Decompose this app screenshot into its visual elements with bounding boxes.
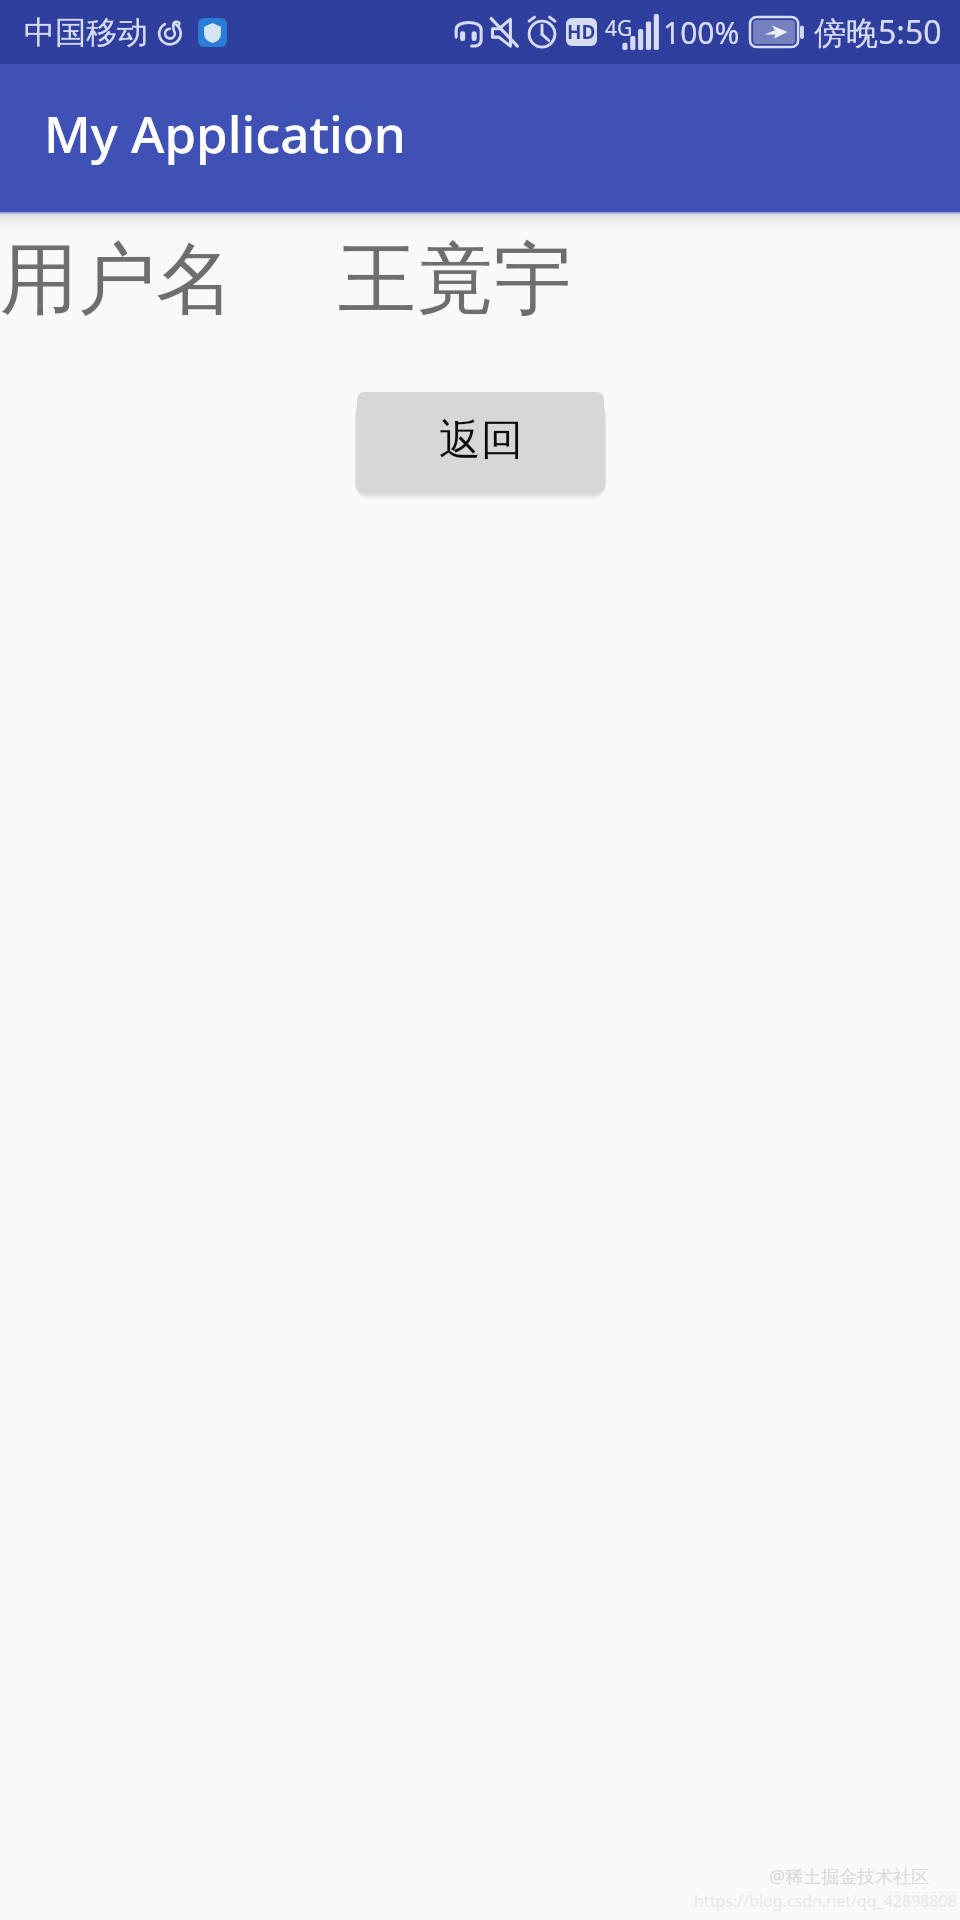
other: Battery charging xyxy=(750,17,805,47)
other: Headset connected xyxy=(453,16,485,48)
button[interactable]: 返回 xyxy=(357,392,604,489)
staticText: 100% xyxy=(663,12,740,53)
other: Alarm set xyxy=(525,15,559,49)
other: Security app xyxy=(198,18,227,47)
staticText: https://blog.csdn.net/qq_42898808 xyxy=(694,1890,957,1912)
other: Mobile signal full xyxy=(605,14,654,50)
staticText: 返回 xyxy=(439,414,523,467)
staticText: 王竟宇 xyxy=(338,231,572,329)
staticText: 中国移动 xyxy=(24,13,148,52)
other: Ringer muted xyxy=(488,16,520,48)
staticText: @稀土掘金技术社区 xyxy=(769,1864,930,1889)
staticText: HD xyxy=(567,19,596,45)
staticText: 4G xyxy=(605,14,633,43)
other: Music playing xyxy=(157,19,184,46)
staticText: My Application xyxy=(44,98,406,167)
staticText: 傍晚5:50 xyxy=(814,10,942,54)
staticText: 用户名 xyxy=(0,231,234,329)
